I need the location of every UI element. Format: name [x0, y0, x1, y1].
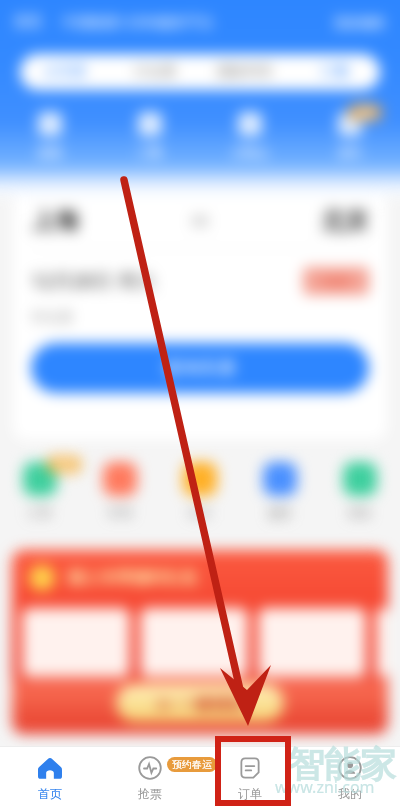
button[interactable]: 订餐 — [100, 112, 200, 159]
staticText: 订餐 — [138, 144, 162, 159]
button[interactable]: 首页 — [0, 746, 100, 807]
staticText: 领券 — [54, 458, 74, 471]
staticText: 常用 — [108, 505, 132, 520]
staticText: ≫ 一键领取 — [155, 692, 246, 715]
button[interactable]: 候补 — [300, 112, 400, 159]
staticText: 优惠 — [355, 106, 375, 119]
staticText: 国际列车 — [217, 63, 273, 81]
staticText: 更多服务 — [334, 14, 386, 30]
button[interactable]: 正晚点 — [200, 112, 300, 159]
button[interactable]: 订餐 — [290, 54, 380, 90]
button[interactable]: 出行 — [160, 462, 240, 520]
staticText: 订餐 — [321, 63, 349, 81]
button[interactable]: 订单 — [200, 746, 300, 807]
button[interactable]: 服务 — [240, 462, 320, 520]
staticText: 中国铁路12306服务平台 — [62, 12, 215, 31]
staticText: 候补 — [338, 144, 362, 159]
staticText: 查询车票 — [164, 357, 236, 380]
staticText: 出行 — [188, 505, 212, 520]
staticText: 正晚点 — [232, 144, 268, 159]
button[interactable]: 我的 — [300, 746, 400, 807]
other: 首页 — [38, 756, 62, 780]
staticText: 北京 — [321, 206, 369, 236]
staticText: 计次票 — [134, 63, 176, 81]
staticText: 智能家 — [288, 742, 396, 787]
staticText: 上海 — [31, 206, 79, 236]
button[interactable]: 国际列车 — [200, 54, 290, 90]
staticText: 购票 — [38, 144, 62, 159]
staticText: 服务 — [268, 505, 292, 520]
button[interactable]: 计次票 — [110, 54, 200, 90]
staticText: 首页 — [14, 13, 42, 31]
button[interactable]: 更多 — [320, 462, 400, 520]
button[interactable]: ≫ 一键领取 — [116, 684, 284, 722]
staticText: 新人专享福利礼包 — [68, 568, 196, 588]
button[interactable]: 查询车票 — [31, 343, 369, 393]
button[interactable]: 购票 — [0, 112, 100, 159]
button[interactable]: 火车票 — [20, 54, 110, 90]
staticText: 火车票 — [44, 63, 86, 81]
staticText: www.zni.com — [275, 776, 375, 798]
other: 我的 — [338, 756, 362, 780]
staticText: 抢票 — [138, 786, 162, 801]
staticText: 首页 — [38, 786, 62, 801]
other: 抢票 — [138, 756, 162, 780]
staticText: 更多 — [348, 505, 372, 520]
button[interactable]: 常用 — [80, 462, 160, 520]
staticText: 我的 — [338, 786, 362, 801]
staticText: 预约春运 — [172, 758, 212, 771]
other: 订单 — [238, 756, 262, 780]
staticText: 12月20日 周六 — [31, 268, 156, 294]
button[interactable]: 订单 — [0, 462, 80, 520]
staticText: 学生票 — [31, 309, 73, 327]
staticText: 抢票 — [323, 273, 349, 289]
staticText: 订单 — [28, 505, 52, 520]
button[interactable]: 抢票 — [100, 746, 200, 807]
button[interactable]: 抢票 — [323, 273, 349, 289]
staticText: 订单 — [238, 786, 262, 801]
